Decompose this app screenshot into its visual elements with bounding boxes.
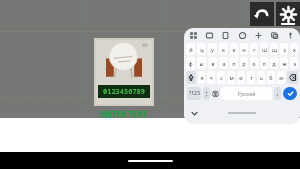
staticText: ц [200,46,204,53]
button[interactable]: к [219,43,228,55]
button[interactable]: ч [207,71,215,84]
button[interactable]: Enter [283,87,297,100]
button[interactable]: ?123 [187,87,201,100]
button[interactable]: и [237,71,245,84]
button[interactable]: й [186,43,195,55]
staticText: ш [262,46,267,53]
button[interactable]: ь [257,71,265,84]
button[interactable]: Settings [276,2,300,26]
button[interactable]: а [219,57,228,69]
staticText: п [232,60,236,67]
staticText: т [250,74,253,81]
staticText: е [232,46,236,53]
button[interactable]: д [270,57,278,69]
button[interactable]: з [280,43,288,55]
staticText: б [269,74,273,81]
button[interactable]: о [250,57,258,69]
staticText: о [252,60,256,67]
staticText: м [229,74,234,81]
button[interactable]: Hide keyboard [189,108,199,118]
button[interactable]: е [230,43,238,55]
button[interactable]: Move keyboard [253,30,264,41]
staticText: у [211,46,214,53]
button[interactable]: ц [197,43,206,55]
staticText: з [283,46,286,53]
staticText: ENTER TEXT [94,108,154,119]
staticText: и [239,74,243,81]
button[interactable]: т [247,71,255,84]
button[interactable]: Apps [188,30,199,41]
staticText: ф [188,60,193,67]
button[interactable]: Translate [269,30,280,41]
staticText: ю [279,74,284,81]
button[interactable]: ф [186,57,195,69]
button[interactable]: п [230,57,238,69]
staticText: р [242,60,246,67]
staticText: ч [209,74,213,81]
button[interactable]: Undo [250,2,274,26]
staticText: ь [260,74,263,81]
staticText: 0123456789 [98,87,150,97]
staticText: с [220,74,223,81]
button[interactable]: щ [270,43,278,55]
button[interactable]: у [208,43,217,55]
button[interactable]: Clipboard [220,30,231,41]
staticText: х [293,46,296,53]
button[interactable]: Emoji [237,30,248,41]
button[interactable]: ж [280,57,288,69]
button[interactable]: э [290,57,298,69]
button[interactable]: Comma [203,87,210,100]
staticText: ы [199,60,204,67]
staticText: ж [282,60,287,67]
staticText: к [222,46,225,53]
staticText: в [211,60,215,67]
staticText: д [272,60,276,67]
button[interactable]: ы [197,57,206,69]
button[interactable]: б [267,71,275,84]
button[interactable]: 0123456789 [94,38,154,106]
button[interactable]: н [240,43,248,55]
staticText: л [262,60,266,67]
button[interactable]: в [208,57,217,69]
button[interactable]: р [240,57,248,69]
staticText: н [242,46,246,53]
button[interactable]: х [290,43,298,55]
button[interactable]: л [260,57,268,69]
button[interactable]: Backspace [287,71,298,84]
button[interactable]: Period [274,87,281,100]
staticText: Русский [238,91,256,97]
button[interactable]: Stickers [204,30,215,41]
staticText: я [200,74,204,81]
staticText: а [222,60,226,67]
button[interactable]: ш [260,43,268,55]
staticText: э [293,60,296,67]
button[interactable]: Русский [221,87,272,100]
button[interactable]: г [250,43,258,55]
staticText: й [189,46,193,53]
button[interactable]: м [227,71,235,84]
button[interactable]: с [217,71,225,84]
button[interactable]: Switch language [212,87,219,100]
button[interactable]: я [198,71,205,84]
button[interactable]: Shift [186,71,196,84]
staticText: ?123 [189,90,200,97]
staticText: щ [272,46,277,53]
button[interactable]: Voice input [285,30,296,41]
button[interactable]: ю [277,71,285,84]
staticText: г [253,46,256,53]
